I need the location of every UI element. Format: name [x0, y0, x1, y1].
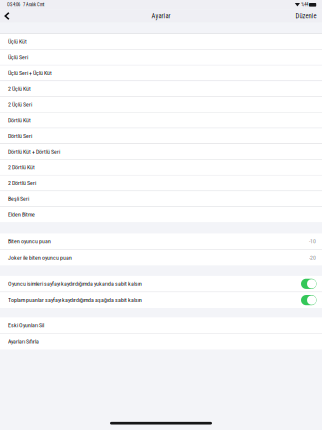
staticText: Beşli Seri [8, 195, 29, 202]
button[interactable]: 2 Üçlü Küt [0, 81, 322, 96]
staticText: 2 Dörtlü Seri [8, 180, 36, 186]
staticText: 2 Üçlü Küt [8, 85, 31, 92]
staticText: Joker ile biten oyuncu puan [8, 254, 72, 261]
staticText: Oyuncu isimleri sayfayı kaydırdığımda yu… [8, 280, 142, 287]
staticText: 2 Üçlü Seri [8, 101, 32, 108]
staticText: Üçlü Küt [8, 38, 27, 45]
button[interactable]: Elden Bitme [0, 207, 322, 222]
button[interactable]: Dörtlü Küt [0, 112, 322, 128]
staticText: Ayarlar [151, 12, 170, 20]
button[interactable]: Üçlü Küt [0, 34, 322, 49]
button[interactable]: Beşli Seri [0, 191, 322, 206]
button[interactable]: Eski Oyunları Sil [0, 317, 322, 333]
staticText: Toplam puanlar sayfayı kaydırdığımda aşa… [8, 297, 142, 304]
staticText: Elden Bitme [8, 211, 35, 218]
staticText: 2 Dörtlü Küt [8, 164, 35, 171]
staticText: Ayarları Sıfırla [8, 338, 39, 345]
staticText: -10 [309, 238, 316, 245]
staticText: -20 [309, 254, 316, 261]
staticText: Biten oyuncu puan [8, 238, 51, 245]
staticText: Dörtlü Küt [8, 117, 31, 124]
staticText: Dörtlü Seri [8, 132, 32, 139]
button[interactable]: Biten oyuncu puan [0, 233, 322, 249]
button[interactable]: Oyuncu isimleri sayfayı kaydırdığımda yu… [0, 276, 322, 292]
button[interactable]: Dörtlü Seri [0, 128, 322, 144]
button[interactable]: Dörtlü Küt + Dörtlü Seri [0, 144, 322, 159]
button[interactable]: 2 Üçlü Seri [0, 97, 322, 112]
staticText: Düzenle [295, 12, 316, 20]
button[interactable]: Toplam puanlar sayfayı kaydırdığımda aşa… [0, 292, 322, 308]
button[interactable]: Ayarları Sıfırla [0, 334, 322, 349]
button[interactable]: Üçlü Seri [0, 50, 322, 65]
staticText: Eski Oyunları Sil [8, 322, 44, 329]
button[interactable]: Üçlü Seri + Üçlü Küt [0, 65, 322, 81]
staticText: Üçlü Seri + Üçlü Küt [8, 70, 52, 76]
staticText: %44 [300, 2, 308, 7]
button[interactable]: 2 Dörtlü Küt [0, 160, 322, 175]
button[interactable]: Geri [0, 10, 14, 22]
button[interactable]: Düzenle [292, 10, 322, 22]
button[interactable]: 2 Dörtlü Seri [0, 175, 322, 191]
staticText: Dörtlü Küt + Dörtlü Seri [8, 148, 60, 155]
staticText: Üçlü Seri [8, 54, 28, 61]
button[interactable]: Joker ile biten oyuncu puan [0, 250, 322, 265]
staticText: ÖS 4:06 7 Aralık Cmt [7, 2, 44, 7]
